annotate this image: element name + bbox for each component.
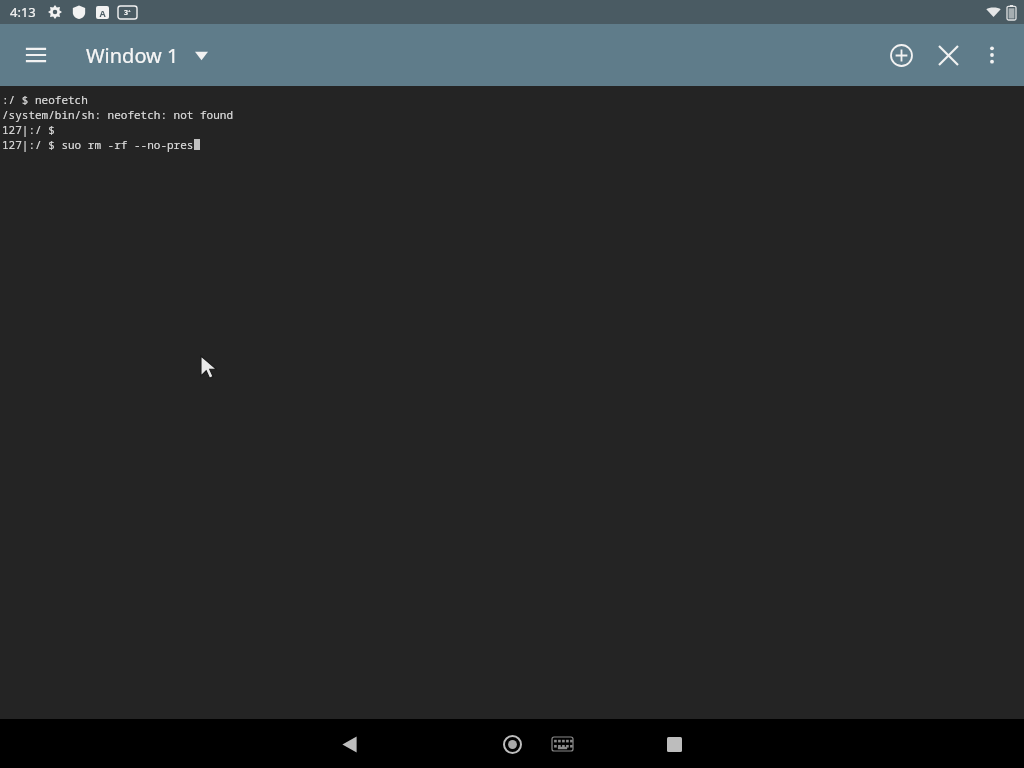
staticText: 4:13 <box>10 3 36 21</box>
staticText: Window 1 <box>86 42 179 69</box>
button[interactable]: New session <box>879 33 923 77</box>
staticText: 127|:/ $ <box>2 122 55 137</box>
button[interactable]: Close session <box>926 33 970 77</box>
staticText: A <box>99 7 106 19</box>
staticText: 127|:/ $ suo rm -rf --no-pres <box>2 137 194 152</box>
staticText: 3⁺ <box>124 8 131 18</box>
button[interactable]: Open navigation drawer <box>14 33 58 77</box>
button[interactable]: Back <box>325 720 373 768</box>
button[interactable]: Home <box>488 720 536 768</box>
staticText: /system/bin/sh: neofetch: not found <box>2 107 233 122</box>
button[interactable]: Show keyboard <box>538 720 586 768</box>
staticText: :/ $ neofetch <box>2 92 88 107</box>
button[interactable]: More options <box>970 33 1014 77</box>
button[interactable]: Window 1 <box>82 36 212 75</box>
button[interactable]: Recent apps <box>650 720 698 768</box>
